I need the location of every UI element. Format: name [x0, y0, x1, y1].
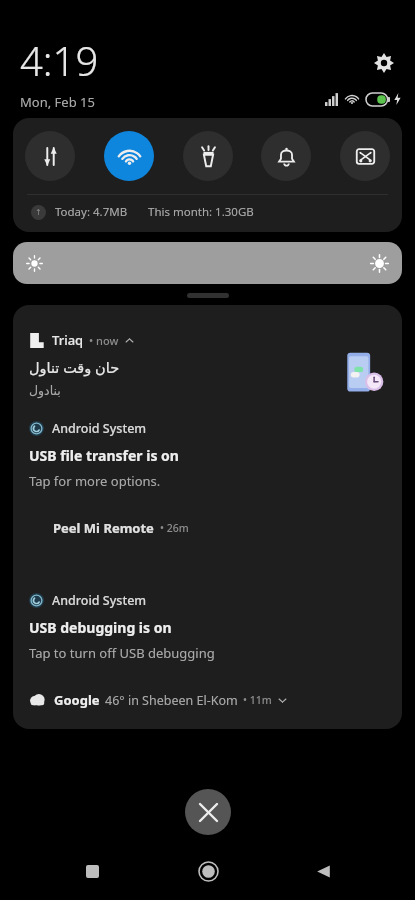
button[interactable]: Home [184, 847, 232, 895]
staticText: Triaq [52, 331, 84, 349]
button[interactable]: Settings [367, 46, 401, 80]
staticText: USB file transfer is on [29, 446, 179, 465]
staticText: • 26m [160, 521, 189, 535]
button[interactable]: Mobile data [25, 131, 75, 181]
staticText: • now [89, 333, 119, 348]
button[interactable]: Android System [13, 592, 402, 662]
staticText: USB debugging is on [29, 618, 172, 637]
staticText: ↑ [35, 208, 42, 217]
staticText: Google [54, 691, 100, 709]
button[interactable]: Screenshot [340, 131, 390, 181]
staticText: Tap to turn off USB debugging [29, 644, 215, 662]
button[interactable] [187, 293, 229, 298]
button[interactable]: Android System [13, 420, 402, 490]
button[interactable]: Wi-Fi [104, 131, 154, 181]
button[interactable]: Google [13, 691, 402, 729]
button[interactable]: Clear all notifications [185, 789, 231, 835]
staticText: Tap for more options. [29, 472, 161, 490]
button[interactable]: Peel Mi Remote [13, 519, 402, 537]
staticText: This month: 1.30GB [148, 204, 254, 220]
staticText: 4:19 [20, 33, 99, 87]
staticText: • 11m [243, 693, 272, 707]
staticText: Android System [52, 420, 147, 437]
staticText: Today: 4.7MB [55, 204, 128, 220]
staticText: Mon, Feb 15 [20, 93, 95, 110]
button[interactable]: Recents [68, 847, 116, 895]
button[interactable]: Flashlight [183, 131, 233, 181]
staticText: Peel Mi Remote [53, 519, 154, 537]
button[interactable]: Back [299, 847, 347, 895]
staticText: Android System [52, 592, 147, 609]
button[interactable]: Do not disturb [261, 131, 311, 181]
button[interactable]: Triaq [13, 305, 402, 398]
staticText: 46° in Shebeen El-Kom [105, 692, 238, 709]
staticText: بنادول [29, 383, 61, 398]
staticText: حان وقت تناول [29, 357, 120, 377]
button[interactable]: Brightness [13, 242, 402, 284]
